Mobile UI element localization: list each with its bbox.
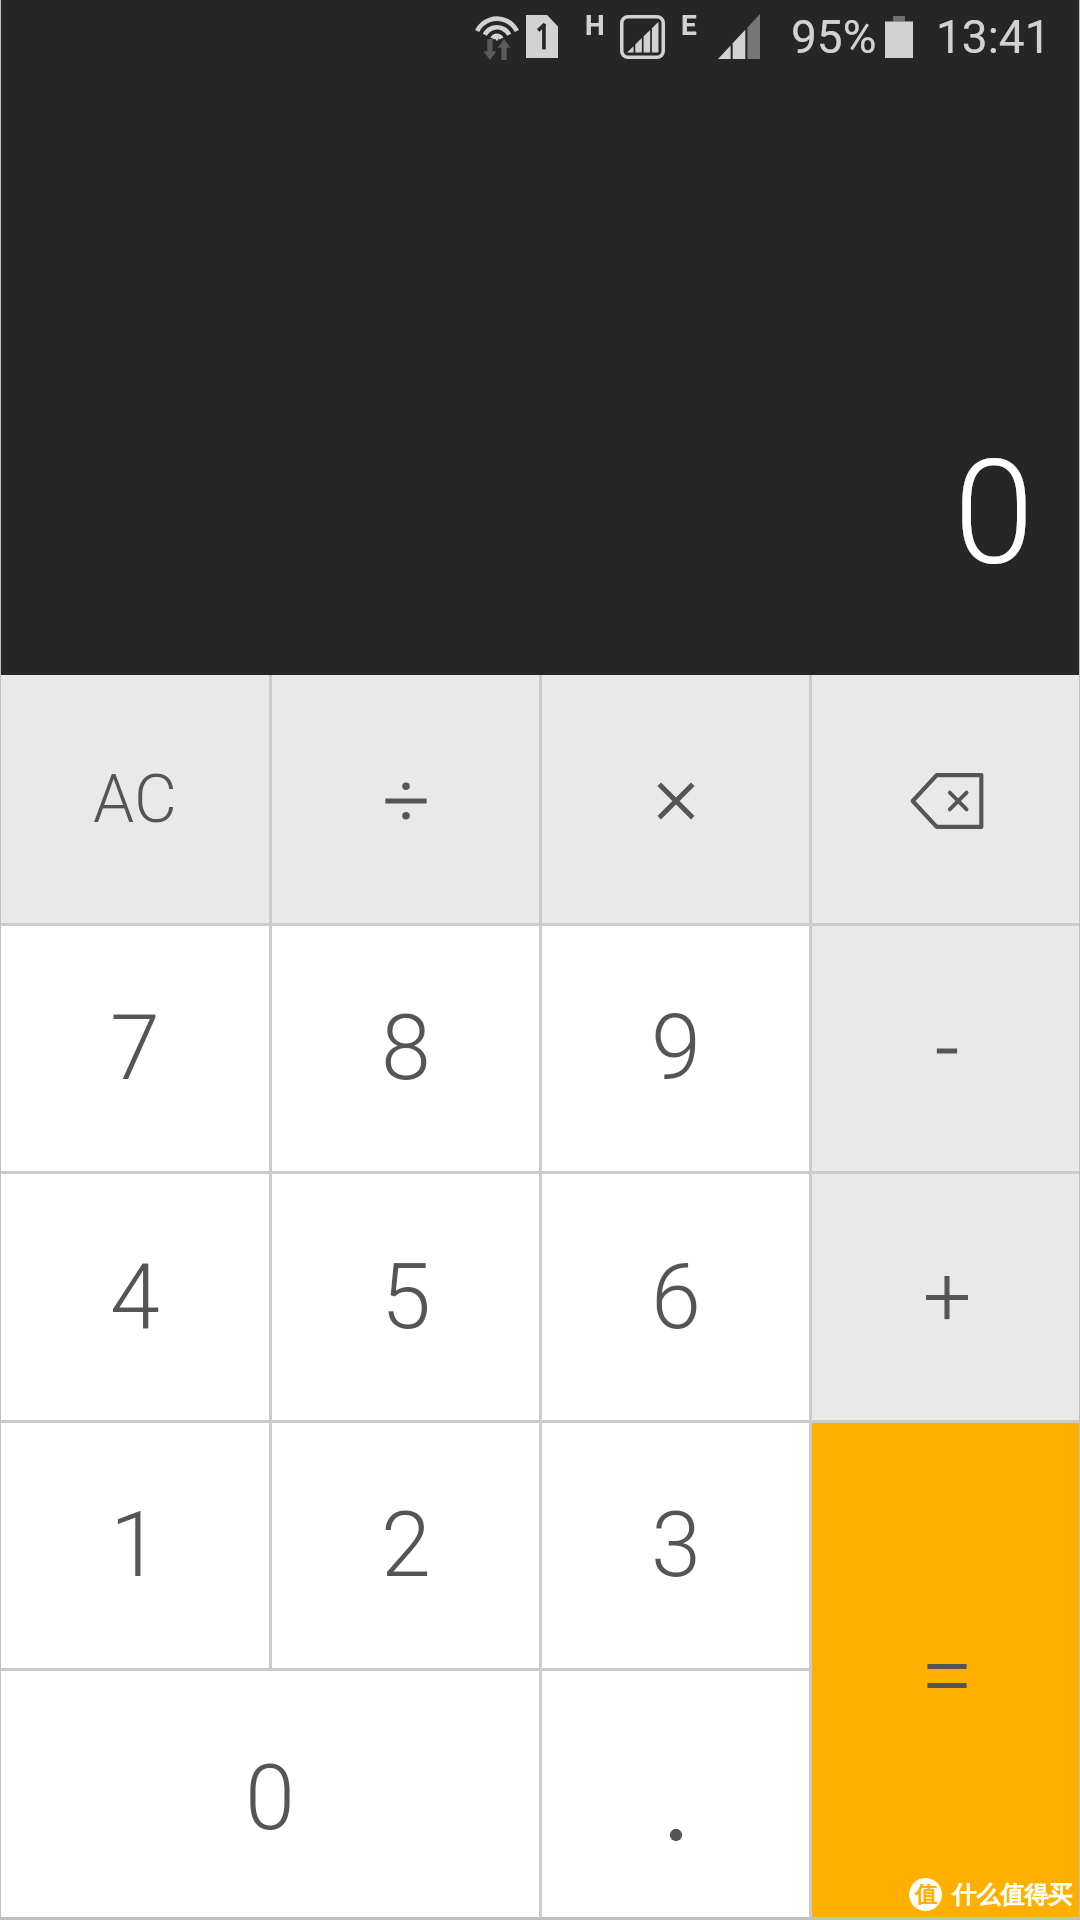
button[interactable]: 1: [0, 1423, 269, 1668]
staticText: 4: [110, 1245, 160, 1350]
button[interactable]: 4: [0, 1174, 269, 1420]
button[interactable]: AC: [0, 675, 269, 923]
staticText: 95%: [791, 10, 877, 64]
staticText: 7: [110, 996, 160, 1101]
staticText: 8: [381, 996, 431, 1101]
button[interactable]: Divide: [272, 675, 539, 923]
staticText: 6: [651, 1245, 701, 1350]
button[interactable]: 9: [542, 926, 809, 1171]
button[interactable]: 6: [542, 1174, 809, 1420]
button[interactable]: Plus: [812, 1174, 1080, 1420]
staticText: 5: [381, 1245, 431, 1350]
button[interactable]: 7: [0, 926, 269, 1171]
button[interactable]: Multiply: [542, 675, 809, 923]
button[interactable]: 2: [272, 1423, 539, 1668]
staticText: 什么值得买: [952, 1880, 1072, 1910]
staticText: 值: [915, 1881, 937, 1909]
button[interactable]: 8: [272, 926, 539, 1171]
button[interactable]: 0: [0, 1671, 539, 1920]
staticText: 9: [651, 996, 701, 1101]
button[interactable]: Decimal point: [542, 1671, 809, 1920]
button[interactable]: 5: [272, 1174, 539, 1420]
staticText: H: [585, 9, 605, 42]
staticText: E: [681, 9, 697, 42]
staticText: 2: [381, 1493, 431, 1598]
staticText: 3: [651, 1493, 701, 1598]
staticText: 1: [110, 1493, 160, 1598]
button[interactable]: Equals: [812, 1423, 1080, 1920]
staticText: AC: [93, 761, 177, 838]
button[interactable]: Minus: [812, 926, 1080, 1171]
staticText: 13:41: [936, 10, 1051, 64]
staticText: 0: [954, 429, 1034, 598]
button[interactable]: Backspace: [812, 675, 1080, 923]
button[interactable]: 3: [542, 1423, 809, 1668]
staticText: 0: [245, 1746, 295, 1851]
